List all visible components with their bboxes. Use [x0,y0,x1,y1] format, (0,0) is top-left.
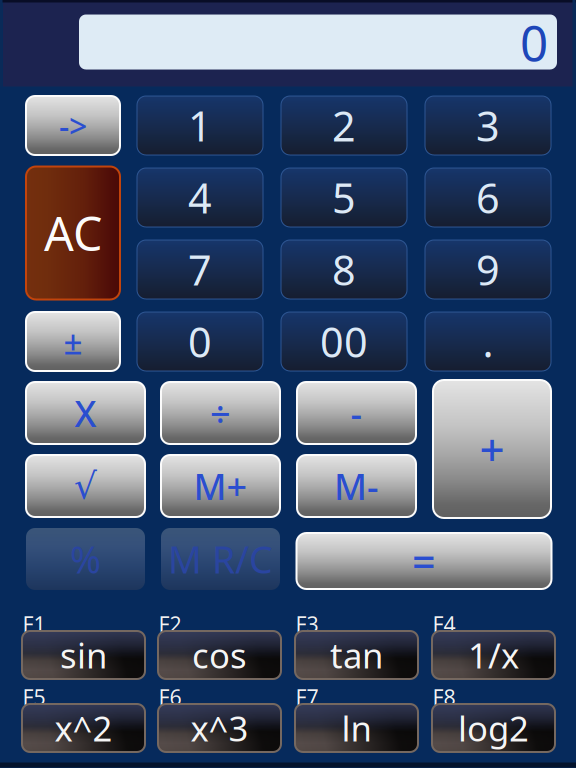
button[interactable]: 00 [281,312,407,371]
staticText: F7 [295,683,318,711]
staticText: M+ [193,462,247,510]
button[interactable]: ln [295,704,418,752]
button[interactable]: 0 [137,312,263,371]
button[interactable]: 3 [425,96,551,155]
staticText: X [74,389,96,437]
staticText: ± [63,319,82,364]
staticText: x^2 [54,705,112,751]
button[interactable]: 1/x [432,631,555,679]
button[interactable]: 4 [137,168,263,227]
staticText: 6 [476,170,500,225]
button[interactable]: 8 [281,240,407,299]
button[interactable]: . [425,312,551,371]
button[interactable]: + [433,380,551,518]
button[interactable]: -> [26,96,120,155]
staticText: 4 [188,170,212,225]
staticText: AC [44,202,102,264]
staticText: 9 [476,242,500,297]
button[interactable]: log2 [432,704,555,752]
button[interactable]: M+ [161,455,280,517]
button[interactable]: % [26,528,145,590]
staticText: F4 [432,610,455,638]
button[interactable]: ÷ [161,382,280,444]
button[interactable]: = [296,533,551,589]
button[interactable]: cos [158,631,281,679]
button[interactable]: 6 [425,168,551,227]
staticText: x^3 [190,705,248,751]
staticText: cos [192,632,247,678]
staticText: F5 [22,683,45,711]
staticText: + [479,420,504,478]
staticText: . [482,314,493,369]
staticText: -> [59,104,87,147]
button[interactable]: AC [26,166,120,299]
button[interactable]: - [297,382,416,444]
staticText: F8 [432,683,455,711]
button[interactable]: √ [26,455,145,517]
staticText: 00 [320,314,368,369]
staticText: = [412,534,436,588]
staticText: sin [60,632,107,678]
staticText: 0 [520,9,548,75]
staticText: % [70,534,101,584]
staticText: 1/x [468,632,519,678]
staticText: F1 [22,610,45,638]
button[interactable]: M R/C [161,528,280,590]
button[interactable]: sin [22,631,145,679]
staticText: F2 [158,610,181,638]
button[interactable]: x^2 [22,704,145,752]
button[interactable]: x^3 [158,704,281,752]
staticText: - [350,389,362,437]
staticText: 8 [332,242,356,297]
staticText: 2 [332,98,356,153]
button[interactable]: M- [297,455,416,517]
button[interactable]: 2 [281,96,407,155]
staticText: tan [330,632,383,678]
staticText: 7 [188,242,212,297]
staticText: 3 [476,98,500,153]
button[interactable]: ± [26,312,120,371]
staticText: M R/C [168,534,273,584]
staticText: F3 [295,610,318,638]
staticText: ÷ [210,389,231,437]
button[interactable]: 5 [281,168,407,227]
button[interactable]: 7 [137,240,263,299]
staticText: M- [334,462,379,510]
button[interactable]: tan [295,631,418,679]
staticText: ln [341,705,371,751]
staticText: log2 [458,705,529,751]
staticText: √ [74,466,97,506]
button[interactable]: 9 [425,240,551,299]
button[interactable]: 1 [137,96,263,155]
staticText: 1 [188,98,212,153]
staticText: 0 [188,314,212,369]
button[interactable]: X [26,382,145,444]
staticText: 5 [332,170,356,225]
staticText: F6 [158,683,181,711]
